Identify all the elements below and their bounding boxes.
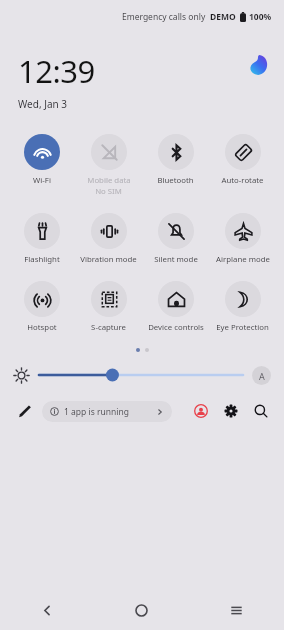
staticText: Device controls <box>148 322 204 333</box>
button[interactable]: 1 app is running <box>42 401 172 422</box>
button[interactable]: Search <box>250 400 272 422</box>
staticText: No SIM <box>95 186 122 197</box>
staticText: Bluetooth <box>157 175 194 186</box>
staticText: Auto-rotate <box>221 175 264 186</box>
staticText: DEMO <box>210 11 236 23</box>
staticText: 100% <box>249 11 272 23</box>
button[interactable]: Wi-Fi <box>8 133 75 187</box>
button[interactable]: Vibration mode <box>75 212 142 266</box>
staticText: 12:39 <box>18 50 95 92</box>
staticText: Wi-Fi <box>33 175 51 186</box>
button[interactable]: Device controls <box>142 280 209 334</box>
staticText: Eye Protection <box>216 322 269 333</box>
button[interactable]: Back <box>0 590 94 630</box>
button[interactable]: Auto brightness <box>252 366 271 385</box>
staticText: 1 app is running <box>64 406 129 418</box>
staticText: S-capture <box>91 322 126 333</box>
button[interactable]: Silent mode <box>142 212 209 266</box>
button[interactable]: Airplane mode <box>209 212 276 266</box>
button[interactable]: Settings <box>220 400 242 422</box>
button[interactable]: Recents <box>189 590 284 630</box>
staticText: A <box>259 370 265 382</box>
staticText: Wed, Jan 3 <box>18 97 68 111</box>
button[interactable]: Hotspot <box>8 280 75 334</box>
button[interactable]: Edit <box>14 400 36 422</box>
staticText: Vibration mode <box>80 254 137 265</box>
button[interactable] <box>39 364 243 386</box>
button[interactable]: Home <box>94 590 189 630</box>
button[interactable]: Mobile data <box>75 133 142 198</box>
button[interactable]: S-capture <box>75 280 142 334</box>
button[interactable]: Bixby <box>248 54 270 76</box>
staticText: Mobile data <box>87 175 131 186</box>
button[interactable]: Auto-rotate <box>209 133 276 187</box>
button[interactable]: Flashlight <box>8 212 75 266</box>
staticText: Flashlight <box>24 254 60 265</box>
button[interactable]: Bluetooth <box>142 133 209 187</box>
button[interactable]: Eye Protection <box>209 280 276 334</box>
staticText: Emergency calls only <box>122 11 206 23</box>
staticText: Hotspot <box>27 322 57 333</box>
staticText: Silent mode <box>154 254 198 265</box>
staticText: Airplane mode <box>216 254 270 265</box>
button[interactable]: User <box>190 400 212 422</box>
